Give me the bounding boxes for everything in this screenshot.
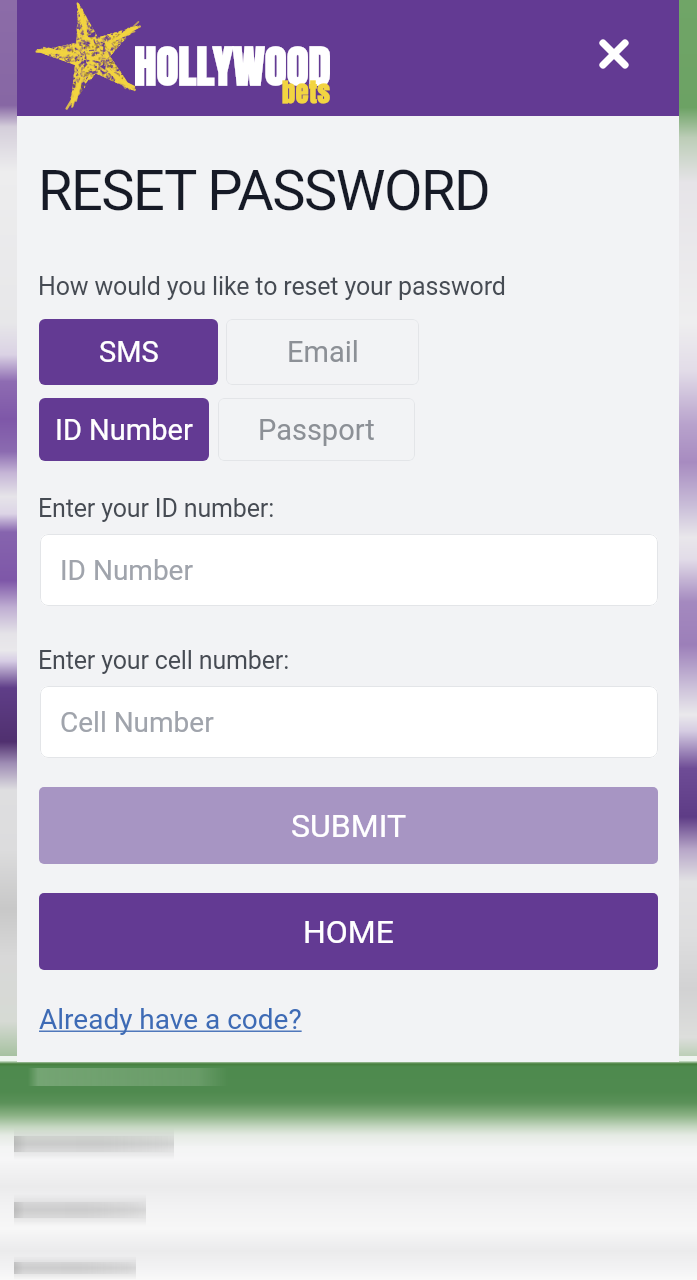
staticText: Enter your cell number: <box>38 646 290 675</box>
button[interactable]: Close <box>583 23 645 85</box>
staticText: Cell Number <box>60 706 214 739</box>
button[interactable]: ID Number <box>40 534 658 606</box>
staticText: ID Number <box>55 413 193 447</box>
staticText: Passport <box>258 413 375 447</box>
staticText: HOLLYWOOD <box>134 32 331 100</box>
staticText: SUBMIT <box>291 807 406 845</box>
staticText: How would you like to reset your passwor… <box>38 272 506 301</box>
button[interactable]: Email <box>226 319 419 385</box>
button[interactable]: HOME <box>39 893 658 970</box>
staticText: ID Number <box>60 554 193 587</box>
staticText: bets <box>282 72 331 111</box>
staticText: Enter your ID number: <box>38 494 275 523</box>
button[interactable]: Already have a code? <box>33 997 308 1042</box>
button[interactable]: ID Number <box>39 398 209 461</box>
staticText: RESET PASSWORD <box>38 158 490 224</box>
button[interactable]: Passport <box>218 398 415 461</box>
staticText: Already have a code? <box>39 1003 302 1036</box>
staticText: HOME <box>303 913 394 951</box>
staticText: Email <box>287 335 359 369</box>
button[interactable]: SUBMIT <box>39 787 658 864</box>
button[interactable]: SMS <box>39 319 218 385</box>
button[interactable]: Cell Number <box>40 686 658 758</box>
staticText: SMS <box>99 335 159 369</box>
